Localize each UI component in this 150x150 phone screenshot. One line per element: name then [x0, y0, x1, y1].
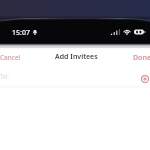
staticText: 15:07 [12, 28, 30, 35]
button[interactable]: Cancel [0, 50, 24, 64]
staticText: Done [133, 53, 150, 61]
staticText: To: [0, 72, 9, 81]
staticText: Add Invitees [55, 52, 98, 62]
button[interactable]: Done [130, 50, 150, 64]
staticText: Cancel [0, 53, 21, 61]
button[interactable]: Add contact [140, 74, 150, 84]
